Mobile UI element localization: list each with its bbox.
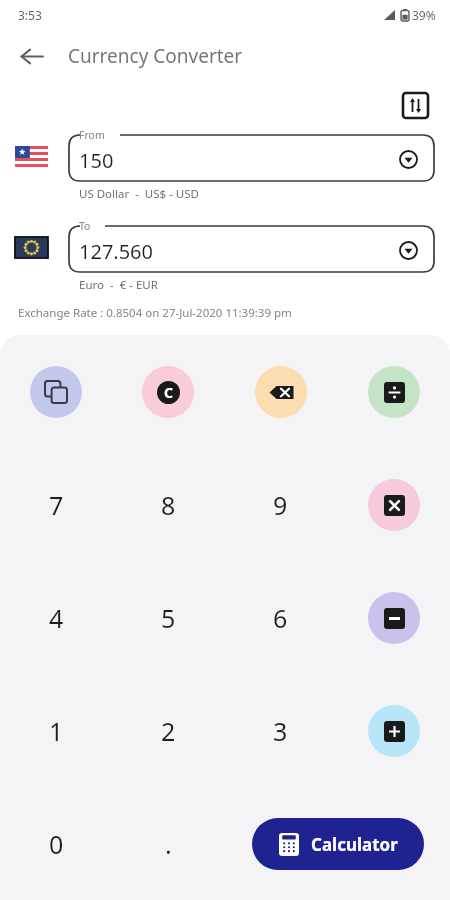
button[interactable]: Select currency bbox=[394, 236, 422, 264]
staticText: 150 bbox=[79, 147, 114, 174]
button[interactable]: Divide bbox=[368, 366, 420, 418]
button[interactable]: Select currency bbox=[394, 145, 422, 173]
button[interactable]: Calculator bbox=[252, 818, 424, 870]
staticText: 7 bbox=[49, 488, 64, 522]
button[interactable]: 3 bbox=[224, 674, 337, 787]
button[interactable]: 4 bbox=[0, 561, 112, 674]
button[interactable]: Backspace bbox=[255, 366, 307, 418]
staticText: 9 bbox=[273, 488, 288, 522]
staticText: 8 bbox=[161, 488, 176, 522]
staticText: From bbox=[79, 128, 105, 142]
staticText: Currency Converter bbox=[68, 43, 243, 69]
staticText: To bbox=[79, 219, 91, 233]
button[interactable]: Add bbox=[368, 705, 420, 757]
staticText: 1 bbox=[49, 714, 64, 748]
staticText: Euro - € - EUR bbox=[79, 277, 158, 293]
button[interactable]: Swap currencies bbox=[399, 89, 431, 121]
staticText: . bbox=[165, 827, 172, 861]
button[interactable]: 6 bbox=[224, 561, 337, 674]
staticText: 3:53 bbox=[18, 7, 42, 23]
staticText: 39% bbox=[412, 7, 436, 23]
button[interactable]: 0 bbox=[0, 787, 112, 900]
button[interactable]: 8 bbox=[112, 448, 224, 561]
button[interactable]: Back bbox=[8, 33, 54, 79]
button[interactable]: Clear bbox=[142, 366, 194, 418]
staticText: 2 bbox=[161, 714, 176, 748]
button[interactable]: Multiply bbox=[368, 479, 420, 531]
button[interactable]: To bbox=[62, 219, 436, 275]
staticText: 127.560 bbox=[79, 238, 153, 265]
staticText: 0 bbox=[49, 827, 64, 861]
staticText: 3 bbox=[273, 714, 288, 748]
button[interactable]: 7 bbox=[0, 448, 112, 561]
button[interactable]: 5 bbox=[112, 561, 224, 674]
staticText: Exchange Rate : 0.8504 on 27-Jul-2020 11… bbox=[18, 305, 292, 321]
staticText: C bbox=[164, 383, 173, 402]
staticText: 6 bbox=[273, 601, 288, 635]
staticText: Calculator bbox=[311, 833, 398, 856]
staticText: US Dollar - US$ - USD bbox=[79, 186, 199, 202]
button[interactable]: 1 bbox=[0, 674, 112, 787]
staticText: 4 bbox=[49, 601, 64, 635]
button[interactable]: 9 bbox=[224, 448, 337, 561]
button[interactable]: Copy bbox=[30, 366, 82, 418]
button[interactable]: Subtract bbox=[368, 592, 420, 644]
button[interactable]: From bbox=[62, 128, 436, 184]
button[interactable]: 2 bbox=[112, 674, 224, 787]
staticText: 5 bbox=[161, 601, 176, 635]
button[interactable]: . bbox=[112, 787, 225, 900]
